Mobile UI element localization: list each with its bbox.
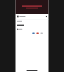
button[interactable]: [15, 14, 48, 19]
button[interactable]: [40, 32, 43, 34]
button[interactable]: [36, 32, 39, 34]
button[interactable]: [32, 32, 35, 34]
